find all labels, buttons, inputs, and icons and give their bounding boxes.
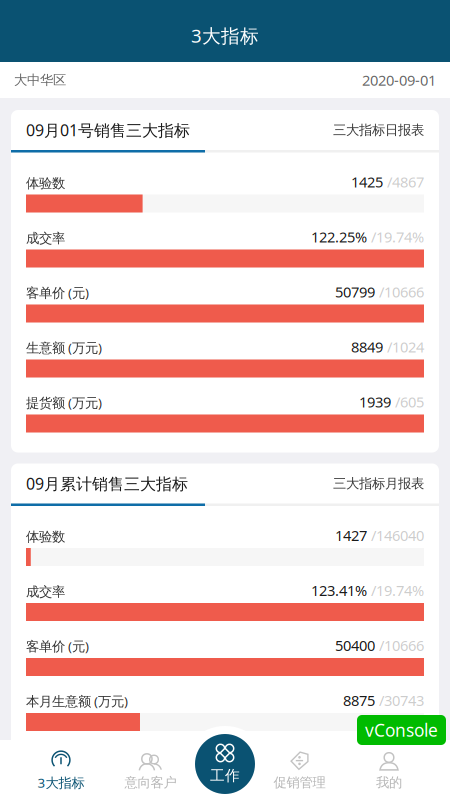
staticText: /10666 xyxy=(375,635,424,655)
staticText: 1939 xyxy=(359,392,391,411)
button[interactable]: 我的 xyxy=(328,740,450,800)
button[interactable]: 工作 xyxy=(195,734,255,794)
staticText: 8849 xyxy=(351,337,383,356)
button[interactable]: vConsole xyxy=(357,715,446,745)
staticText: 工作 xyxy=(210,766,240,784)
staticText: 三大指标日报表 xyxy=(333,122,424,138)
button[interactable]: 三大指标月报表 xyxy=(333,475,424,492)
staticText: 促销管理 xyxy=(273,774,325,791)
staticText: /19.74% xyxy=(367,580,424,600)
staticText: 生意额 (万元) xyxy=(26,339,102,356)
staticText: /30743 xyxy=(375,690,424,710)
button[interactable]: 促销管理 xyxy=(271,740,328,800)
staticText: 8875 xyxy=(343,690,375,710)
button[interactable]: 三大指标日报表 xyxy=(333,122,424,138)
staticText: 客单价 (元) xyxy=(26,637,89,655)
button[interactable]: 意向客户 xyxy=(122,740,179,800)
staticText: 客单价 (元) xyxy=(26,284,89,301)
staticText: vConsole xyxy=(365,718,438,741)
staticText: 09月01号销售三大指标 xyxy=(26,119,190,141)
staticText: 09月累计销售三大指标 xyxy=(26,473,188,494)
staticText: 本月生意额 (万元) xyxy=(26,692,128,710)
staticText: 成交率 xyxy=(26,230,65,246)
staticText: 成交率 xyxy=(26,584,65,600)
staticText: 3大指标 xyxy=(191,23,259,48)
staticText: 我的 xyxy=(376,774,402,791)
staticText: 体验数 xyxy=(26,529,65,545)
staticText: 122.25% xyxy=(311,227,367,246)
staticText: 1427 xyxy=(335,525,367,545)
staticText: /1024 xyxy=(383,337,424,356)
staticText: 50799 xyxy=(335,282,375,301)
staticText: 三大指标月报表 xyxy=(333,475,424,492)
staticText: /19.74% xyxy=(367,227,424,246)
staticText: /146040 xyxy=(367,525,424,545)
staticText: 意向客户 xyxy=(124,774,176,791)
staticText: /4867 xyxy=(383,172,424,191)
staticText: 1425 xyxy=(351,172,383,191)
staticText: /605 xyxy=(391,392,424,411)
staticText: 50400 xyxy=(335,635,375,655)
staticText: 3大指标 xyxy=(37,774,84,791)
staticText: 2020-09-01 xyxy=(362,70,436,90)
staticText: /10666 xyxy=(375,282,424,301)
button[interactable]: 3大指标 xyxy=(0,740,122,800)
staticText: 大中华区 xyxy=(14,72,66,88)
staticText: 123.41% xyxy=(311,580,367,600)
staticText: 体验数 xyxy=(26,175,65,191)
staticText: 提货额 (万元) xyxy=(26,394,102,411)
